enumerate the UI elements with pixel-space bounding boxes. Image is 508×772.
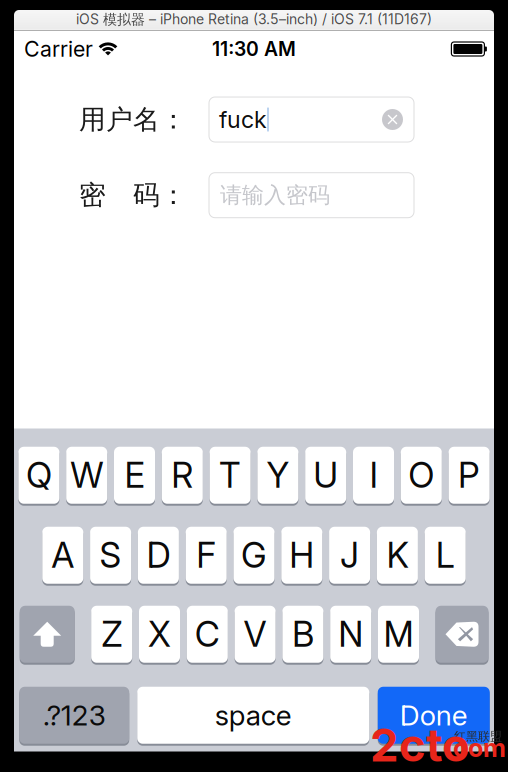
staticText: 2cto <box>370 718 470 772</box>
button[interactable]: J <box>329 526 370 585</box>
staticText: W <box>70 454 103 496</box>
staticText: T <box>219 454 241 496</box>
staticText: 红黑联盟 <box>454 729 502 744</box>
staticText: X <box>148 613 171 655</box>
staticText: V <box>244 613 267 655</box>
button[interactable]: H <box>281 526 322 585</box>
button[interactable]: Q <box>18 446 59 505</box>
staticText: L <box>436 534 455 576</box>
button[interactable]: O <box>401 446 442 505</box>
staticText: U <box>313 454 338 496</box>
staticText: fuck <box>219 105 267 134</box>
button[interactable]: U <box>305 446 346 505</box>
staticText: Q <box>26 454 52 496</box>
staticText: C <box>195 613 220 655</box>
staticText: 11:30 AM <box>212 37 296 61</box>
button[interactable]: X <box>139 605 180 664</box>
button[interactable]: .?123 <box>19 686 129 745</box>
button[interactable]: W <box>66 446 107 505</box>
staticText: .com <box>445 732 506 763</box>
staticText: N <box>338 613 363 655</box>
button[interactable]: B <box>282 605 323 664</box>
staticText: H <box>289 534 314 576</box>
staticText: S <box>100 534 122 576</box>
button[interactable]: R <box>162 446 203 505</box>
button[interactable]: S <box>90 526 131 585</box>
button[interactable]: C <box>187 605 228 664</box>
button[interactable]: F <box>186 526 227 585</box>
button[interactable]: Y <box>257 446 298 505</box>
button[interactable]: G <box>233 526 274 585</box>
staticText: E <box>124 454 144 496</box>
staticText: Y <box>266 454 289 496</box>
staticText: G <box>241 534 267 576</box>
staticText: .?123 <box>43 698 106 732</box>
button[interactable]: E <box>114 446 155 505</box>
button[interactable]: K <box>377 526 418 585</box>
staticText: M <box>383 613 413 655</box>
staticText: K <box>386 534 408 576</box>
button[interactable]: Z <box>91 605 132 664</box>
staticText: I <box>369 454 377 496</box>
staticText: D <box>146 534 170 576</box>
staticText: F <box>196 534 216 576</box>
staticText: Carrier <box>24 36 93 62</box>
staticText: B <box>292 613 314 655</box>
staticText: O <box>408 454 434 496</box>
staticText: J <box>340 534 359 576</box>
staticText: Done <box>400 698 468 732</box>
staticText: iOS 模拟器 – iPhone Retina (3.5–inch) / iOS… <box>76 11 432 28</box>
button[interactable]: P <box>449 446 490 505</box>
button[interactable]: I <box>353 446 394 505</box>
staticText: Z <box>101 613 122 655</box>
staticText: space <box>215 698 292 732</box>
button[interactable]: Done <box>378 686 490 745</box>
button[interactable]: Delete <box>435 605 488 664</box>
button[interactable]: L <box>425 526 466 585</box>
button[interactable]: T <box>210 446 251 505</box>
staticText: 用户名： <box>79 103 187 136</box>
button[interactable]: D <box>138 526 179 585</box>
staticText: 密 码： <box>79 178 187 212</box>
button[interactable]: V <box>235 605 276 664</box>
button[interactable]: Shift <box>20 605 75 664</box>
staticText: R <box>171 454 193 496</box>
button[interactable]: N <box>330 605 371 664</box>
button[interactable]: M <box>378 605 419 664</box>
staticText: A <box>51 534 74 576</box>
button[interactable]: space <box>137 686 369 745</box>
staticText: 请输入密码 <box>220 181 330 209</box>
staticText: P <box>458 454 480 496</box>
button[interactable]: A <box>42 526 83 585</box>
